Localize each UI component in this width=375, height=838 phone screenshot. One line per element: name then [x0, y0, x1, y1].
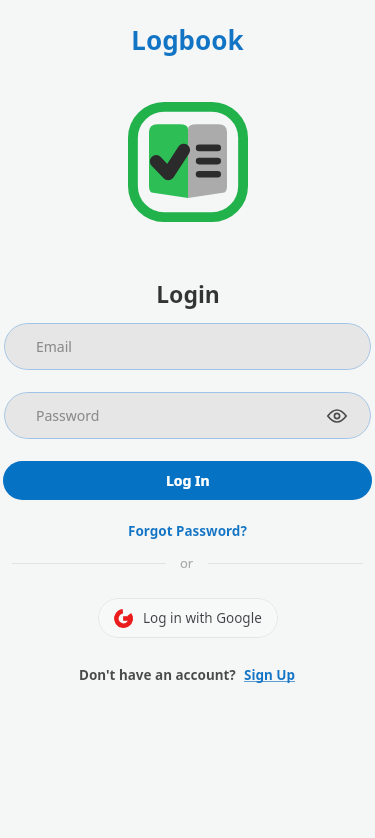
button[interactable]: Password: [4, 392, 371, 439]
staticText: Log In: [166, 471, 210, 490]
staticText: Don't have an account?: [79, 666, 236, 684]
staticText: Email: [36, 337, 72, 356]
button[interactable]: Log in with Google: [98, 598, 278, 638]
staticText: Sign Up: [244, 666, 296, 684]
staticText: or: [180, 554, 194, 572]
button[interactable]: Email: [4, 323, 371, 370]
button[interactable]: Log In: [3, 461, 372, 500]
other: Logbook logo: [128, 102, 248, 222]
staticText: Log in with Google: [143, 609, 262, 627]
button[interactable]: Show password: [325, 404, 349, 428]
staticText: Password: [36, 406, 100, 425]
staticText: Login: [156, 278, 220, 309]
staticText: Forgot Password?: [128, 522, 247, 540]
button[interactable]: Forgot Password?: [120, 520, 255, 542]
button[interactable]: Sign Up: [244, 666, 296, 684]
staticText: Logbook: [131, 22, 244, 57]
